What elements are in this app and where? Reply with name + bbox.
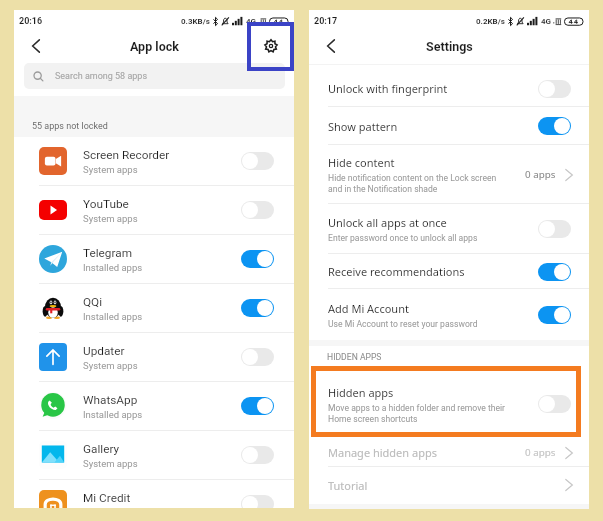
button[interactable]: Toggle off <box>241 446 274 464</box>
staticText: Hide content <box>328 155 395 170</box>
button[interactable]: Tutorial <box>309 467 589 503</box>
staticText: QQi <box>83 295 103 309</box>
staticText: Updater <box>83 344 125 358</box>
staticText: Installed apps <box>83 409 143 420</box>
staticText: Add Mi Account <box>328 301 409 316</box>
button[interactable]: Settings <box>257 32 285 60</box>
button[interactable]: Telegram <box>14 235 294 283</box>
button[interactable]: Add Mi Account <box>309 289 589 340</box>
button[interactable]: Show pattern <box>309 107 589 145</box>
button[interactable]: Toggle on <box>538 306 571 324</box>
staticText: Show pattern <box>328 119 398 134</box>
staticText: Hide notification content on the Lock sc… <box>328 173 497 194</box>
staticText: 4G <box>541 17 552 26</box>
button[interactable]: Toggle off <box>241 152 274 170</box>
staticText: YouTube <box>83 197 129 211</box>
button[interactable]: YouTube <box>14 186 294 234</box>
staticText: Screen Recorder <box>83 148 170 162</box>
staticText: Hidden apps <box>328 385 394 400</box>
staticText: Tutorial <box>328 478 368 493</box>
button[interactable]: Back <box>317 32 345 60</box>
staticText: 0 apps <box>525 168 556 181</box>
staticText: 0.3KB/s <box>181 17 210 26</box>
button[interactable]: Receive recommendations <box>309 254 589 289</box>
staticText: Unlock all apps at once <box>328 215 447 230</box>
button[interactable]: Toggle off <box>538 395 571 413</box>
staticText: Use Mi Account to reset your password <box>328 319 478 329</box>
staticText: Move apps to a hidden folder and remove … <box>328 403 506 424</box>
staticText: Gallery <box>83 442 120 456</box>
button[interactable]: Toggle off <box>241 348 274 366</box>
staticText: Settings <box>426 39 473 54</box>
button[interactable]: Hidden apps <box>309 371 589 437</box>
staticText: Manage hidden apps <box>328 445 437 460</box>
button[interactable]: Search among 58 apps <box>24 63 285 89</box>
button[interactable]: Mi Credit <box>14 480 294 508</box>
staticText: 20:17 <box>314 16 338 27</box>
staticText: System apps <box>83 360 138 371</box>
staticText: App lock <box>130 39 179 54</box>
button[interactable]: Toggle on <box>241 397 274 415</box>
button[interactable]: Toggle off <box>241 201 274 219</box>
staticText: Telegram <box>83 246 133 260</box>
button[interactable]: WhatsApp <box>14 382 294 430</box>
staticText: Mi Credit <box>83 491 131 505</box>
button[interactable]: Gallery <box>14 431 294 479</box>
button[interactable]: Screen Recorder <box>14 137 294 185</box>
button[interactable]: Hide content <box>309 145 589 204</box>
staticText: Enter password once to unlock all apps <box>328 233 478 243</box>
button[interactable]: QQi <box>14 284 294 332</box>
button[interactable]: Unlock all apps at once <box>309 204 589 254</box>
staticText: HIDDEN APPS <box>327 352 382 362</box>
staticText: 0 apps <box>525 446 556 459</box>
staticText: 20:16 <box>19 16 43 27</box>
staticText: Installed apps <box>83 262 143 273</box>
staticText: WhatsApp <box>83 393 138 407</box>
button[interactable]: Manage hidden apps <box>309 437 589 467</box>
staticText: 4G <box>246 17 257 26</box>
staticText: Receive recommendations <box>328 264 465 279</box>
button[interactable]: Unlock with fingerprint <box>309 70 589 107</box>
button[interactable]: Toggle on <box>538 117 571 135</box>
staticText: 55 apps not locked <box>32 121 108 132</box>
staticText: Installed apps <box>83 311 143 322</box>
staticText: Search among 58 apps <box>55 71 148 82</box>
button[interactable]: Toggle off <box>538 220 571 238</box>
staticText: Unlock with fingerprint <box>328 81 448 96</box>
button[interactable]: Toggle on <box>241 250 274 268</box>
staticText: System apps <box>83 458 138 469</box>
button[interactable]: Back <box>22 32 50 60</box>
staticText: 0.2KB/s <box>476 17 505 26</box>
staticText: System apps <box>83 213 138 224</box>
button[interactable]: Updater <box>14 333 294 381</box>
button[interactable]: Toggle on <box>538 263 571 281</box>
button[interactable]: Toggle off <box>241 495 274 508</box>
button[interactable]: Toggle off <box>538 80 571 98</box>
button[interactable]: Toggle on <box>241 299 274 317</box>
staticText: System apps <box>83 164 138 175</box>
